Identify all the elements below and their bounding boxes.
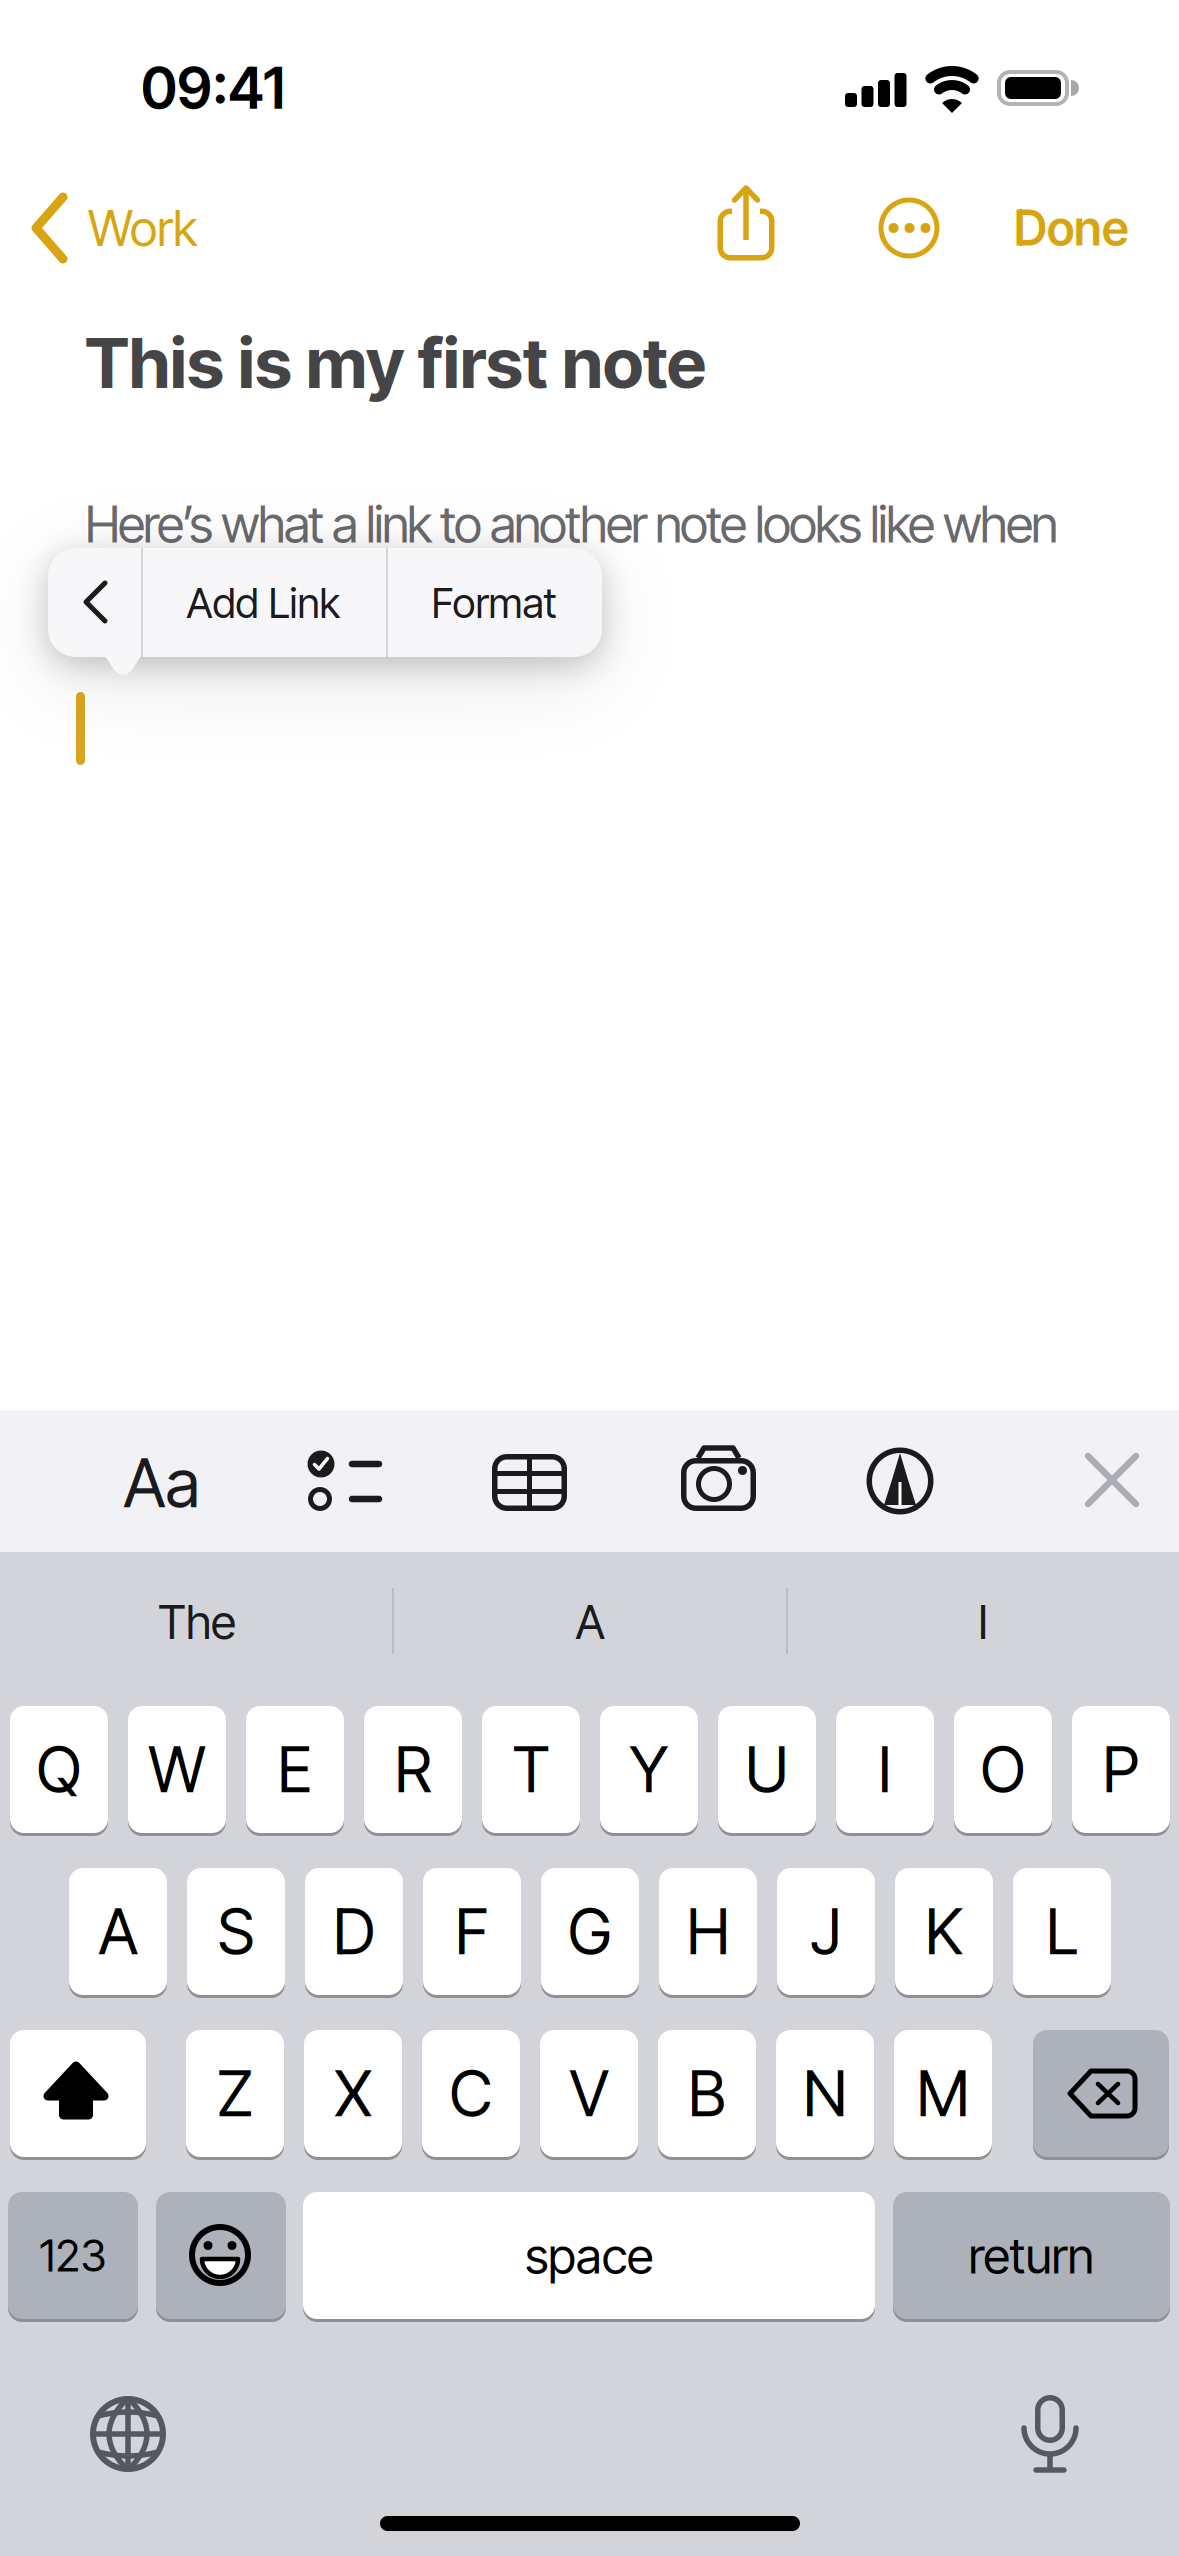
staticText: A <box>575 1594 604 1650</box>
staticText: C <box>449 2056 492 2130</box>
staticText: The <box>158 1594 236 1650</box>
staticText: 123 <box>39 2229 106 2281</box>
staticText: H <box>686 1894 729 1968</box>
staticText: Done <box>1014 200 1129 256</box>
staticText: K <box>925 1894 963 1968</box>
staticText: I <box>978 1594 988 1650</box>
staticText: 09:41 <box>141 54 285 122</box>
staticText: Here’s what a link to another note looks… <box>85 494 1058 554</box>
staticText: D <box>333 1894 375 1968</box>
staticText: Y <box>629 1732 668 1806</box>
staticText: This is my first note <box>85 322 706 404</box>
staticText: I <box>878 1732 892 1806</box>
staticText: T <box>512 1732 549 1806</box>
staticText: X <box>334 2056 371 2130</box>
staticText: F <box>455 1894 489 1968</box>
staticText: J <box>810 1894 841 1968</box>
staticText: N <box>803 2056 847 2130</box>
staticText: P <box>1102 1732 1139 1806</box>
staticText: U <box>745 1732 789 1806</box>
staticText: W <box>148 1732 205 1806</box>
staticText: L <box>1046 1894 1078 1968</box>
staticText: R <box>394 1732 431 1806</box>
staticText: Aa <box>123 1444 200 1522</box>
staticText: space <box>525 2226 653 2285</box>
staticText: A <box>98 1894 137 1968</box>
staticText: E <box>277 1732 312 1806</box>
staticText: Q <box>36 1732 81 1806</box>
staticText: Z <box>217 2056 253 2130</box>
staticText: Format <box>431 579 556 627</box>
staticText: O <box>980 1732 1025 1806</box>
staticText: Work <box>88 199 198 257</box>
staticText: S <box>217 1894 254 1968</box>
staticText: B <box>688 2056 726 2130</box>
staticText: G <box>568 1894 612 1968</box>
staticText: return <box>968 2226 1094 2285</box>
staticText: V <box>569 2056 608 2130</box>
staticText: Add Link <box>186 579 340 627</box>
staticText: M <box>916 2056 969 2130</box>
